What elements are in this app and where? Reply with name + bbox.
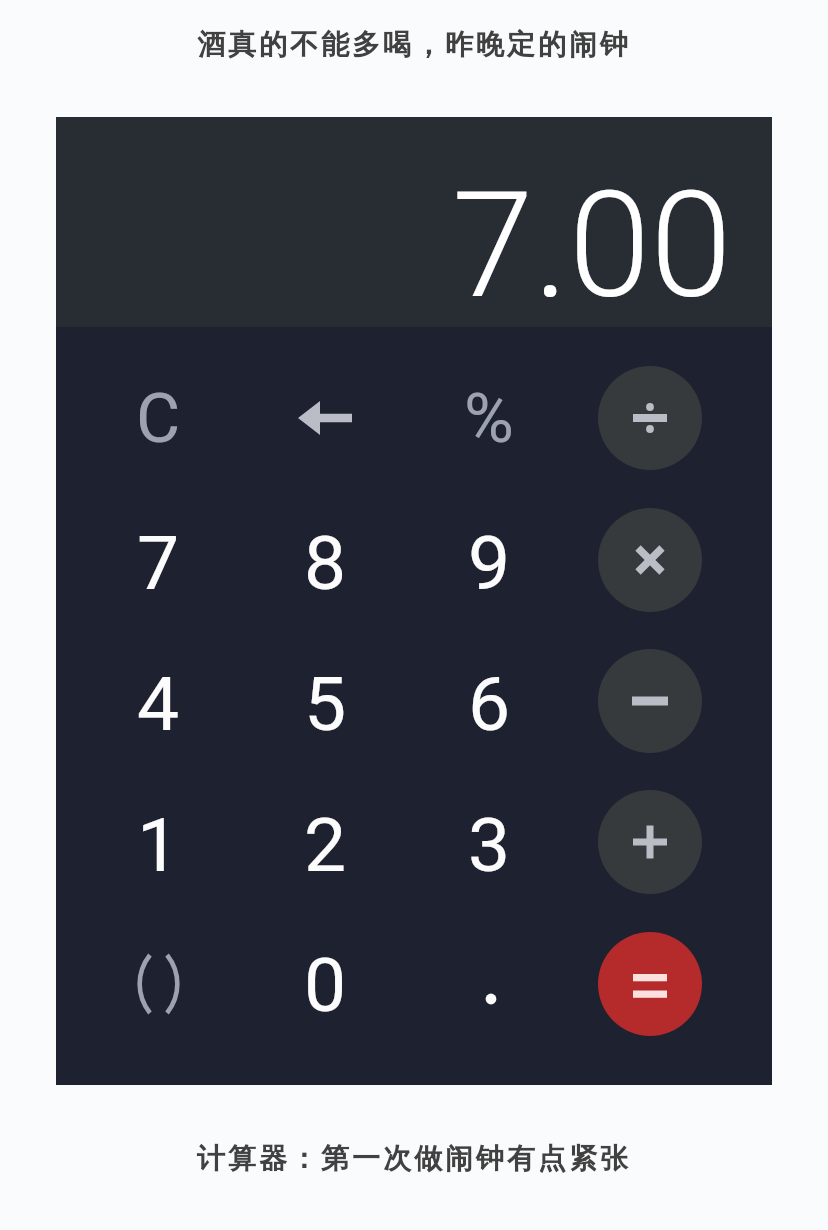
button[interactable]: Multiply — [598, 508, 702, 612]
button[interactable]: 8 — [253, 491, 397, 635]
button[interactable]: 7 — [86, 491, 230, 635]
button[interactable]: % — [417, 347, 561, 491]
button[interactable]: Result 7.00 — [56, 117, 772, 327]
staticText: 9 — [468, 519, 511, 607]
staticText: 2 — [304, 801, 347, 889]
staticText: 7 — [137, 519, 180, 607]
button[interactable]: Subtract — [598, 649, 702, 753]
staticText: 酒真的不能多喝，昨晚定的闹钟 — [0, 27, 828, 62]
staticText: 计算器：第一次做闹钟有点紧张 — [0, 1141, 828, 1176]
button[interactable]: Backspace — [253, 346, 397, 490]
staticText: 5 — [304, 660, 347, 748]
button[interactable]: 6 — [417, 632, 561, 776]
button[interactable]: 2 — [253, 773, 397, 917]
button[interactable]: Parentheses — [86, 912, 230, 1056]
button[interactable]: Equals — [598, 932, 702, 1036]
staticText: 0 — [304, 941, 347, 1029]
button[interactable]: C — [86, 347, 230, 491]
staticText: C — [136, 379, 181, 459]
button[interactable]: 3 — [417, 773, 561, 917]
button[interactable]: Divide — [598, 366, 702, 470]
button[interactable]: 4 — [86, 632, 230, 776]
staticText: 3 — [468, 801, 511, 889]
button[interactable]: Add — [598, 790, 702, 894]
staticText: 1 — [137, 801, 180, 889]
button[interactable]: 0 — [253, 913, 397, 1057]
staticText: % — [464, 379, 514, 459]
staticText: 7.00 — [452, 160, 732, 332]
staticText: 6 — [468, 660, 511, 748]
button[interactable]: 5 — [253, 632, 397, 776]
staticText: 4 — [137, 660, 180, 748]
button[interactable]: 1 — [86, 773, 230, 917]
staticText: 8 — [304, 519, 347, 607]
button[interactable]: Decimal point — [419, 927, 563, 1071]
button[interactable]: 9 — [417, 491, 561, 635]
